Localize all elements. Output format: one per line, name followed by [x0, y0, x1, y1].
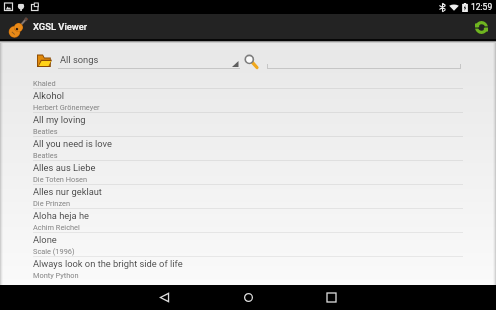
staticText: Alles aus Liebe: [33, 162, 96, 173]
button[interactable]: Search: [243, 54, 258, 69]
staticText: Monty Python: [33, 271, 79, 280]
button[interactable]: All my loving: [0, 112, 496, 136]
staticText: Khaled: [33, 79, 56, 88]
button[interactable]: Aloha heja he: [0, 208, 496, 232]
staticText: Achim Reichel: [33, 223, 80, 232]
button[interactable]: Alles aus Liebe: [0, 160, 496, 184]
staticText: Beatles: [33, 127, 58, 136]
staticText: Alles nur geklaut: [33, 186, 102, 197]
staticText: 12:59: [471, 2, 493, 12]
staticText: Aloha heja he: [33, 210, 89, 221]
button[interactable]: Recent apps: [307, 285, 356, 310]
staticText: Scale (1996): [33, 247, 75, 256]
button[interactable]: All songs: [34, 48, 240, 70]
staticText: All songs: [60, 54, 99, 65]
button[interactable]: Always look on the bright side of life: [0, 256, 496, 280]
staticText: Die Toten Hosen: [33, 175, 88, 184]
button[interactable]: Alone: [0, 232, 496, 256]
staticText: All you need is love: [33, 138, 112, 149]
button[interactable]: Khaled: [0, 70, 496, 88]
button[interactable]: Back: [140, 285, 189, 310]
button[interactable]: All you need is love: [0, 136, 496, 160]
staticText: Beatles: [33, 151, 58, 160]
staticText: Die Prinzen: [33, 199, 71, 208]
staticText: XGSL Viewer: [33, 21, 88, 32]
button[interactable]: Alles nur geklaut: [0, 184, 496, 208]
staticText: Alkohol: [33, 90, 65, 101]
staticText: Alone: [33, 234, 57, 245]
button[interactable]: Home: [224, 285, 273, 310]
staticText: All my loving: [33, 114, 86, 125]
staticText: Herbert Grönemeyer: [33, 103, 100, 112]
button[interactable]: Refresh: [471, 17, 491, 37]
staticText: Always look on the bright side of life: [33, 258, 183, 269]
button[interactable]: Alkohol: [0, 88, 496, 112]
